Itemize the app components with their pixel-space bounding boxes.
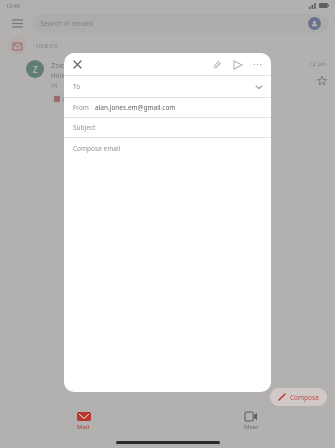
staticText: To — [73, 82, 81, 91]
staticText: Holiday pictures — [51, 71, 101, 80]
button[interactable]: Compose email — [64, 138, 271, 392]
button[interactable]: Attach file — [211, 58, 224, 71]
staticText: INBOX — [36, 42, 59, 50]
staticText: Compose — [290, 393, 319, 402]
button[interactable]: Mail — [0, 406, 167, 436]
button[interactable]: Open navigation menu — [8, 14, 26, 32]
button[interactable]: Star — [317, 76, 327, 86]
staticText: Mail — [77, 423, 90, 431]
staticText: Meet — [244, 423, 259, 431]
button[interactable]: Inbox — [8, 37, 26, 55]
staticText: From — [73, 103, 89, 112]
button[interactable]: Subject — [64, 118, 271, 137]
staticText: Hi — [51, 81, 58, 90]
button[interactable]: Send — [231, 58, 244, 71]
button[interactable]: From — [64, 98, 271, 117]
staticText: Compose email — [73, 144, 121, 153]
staticText: Zoe Taylor — [51, 60, 88, 70]
button[interactable]: More options — [251, 58, 264, 71]
staticText: pho — [63, 95, 74, 102]
staticText: Subject — [73, 123, 96, 132]
button[interactable]: Meet — [167, 406, 335, 436]
staticText: 12 Jan — [309, 60, 327, 68]
staticText: alan.jones.em@gmail.com — [95, 103, 176, 112]
staticText: Z — [33, 64, 38, 75]
staticText: Search in emails — [40, 19, 94, 29]
button[interactable]: Compose — [270, 388, 327, 406]
button[interactable]: Z — [0, 57, 335, 104]
staticText: 10:40 — [6, 2, 21, 9]
button[interactable]: Search in emails — [32, 14, 329, 33]
button[interactable]: To — [64, 76, 271, 97]
button[interactable]: Close — [71, 58, 84, 71]
